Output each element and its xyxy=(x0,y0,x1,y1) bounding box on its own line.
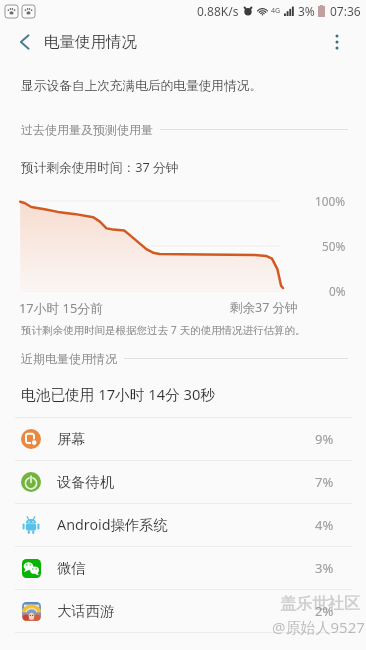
staticText: 剩余37 分钟 xyxy=(230,299,298,316)
button[interactable]: 微信 xyxy=(0,547,366,589)
button[interactable]: 大话西游 xyxy=(0,590,366,632)
staticText: 17小时 15分前 xyxy=(19,299,103,316)
staticText: 预计剩余使用时间：37 分钟 xyxy=(21,158,179,175)
button[interactable]: 设备待机 xyxy=(0,461,366,503)
staticText: 电池已使用 17小时 14分 30秒 xyxy=(21,384,216,404)
staticText: 4G xyxy=(271,6,281,16)
button[interactable]: 屏幕 xyxy=(0,418,366,460)
staticText: 3% xyxy=(315,559,334,577)
button[interactable]: More options xyxy=(317,22,357,62)
staticText: 设备待机 xyxy=(57,473,115,491)
staticText: @原始人9527 xyxy=(272,617,365,637)
staticText: 显示设备自上次充满电后的电量使用情况。 xyxy=(21,78,263,94)
staticText: 预计剩余使用时间是根据您过去 7 天的使用情况进行估算的。 xyxy=(21,323,306,337)
staticText: 0% xyxy=(329,283,346,299)
button[interactable]: Android操作系统 xyxy=(0,504,366,546)
staticText: Android操作系统 xyxy=(57,515,168,535)
button[interactable]: Back xyxy=(0,22,48,62)
staticText: 50% xyxy=(322,238,346,254)
staticText: 盖乐世社区 xyxy=(280,594,360,614)
staticText: 过去使用量及预测使用量 xyxy=(21,122,153,137)
staticText: 近期电量使用情况 xyxy=(21,351,117,366)
staticText: 7% xyxy=(315,473,334,491)
staticText: 100% xyxy=(315,193,346,209)
staticText: 07:36 xyxy=(330,3,361,19)
staticText: 9% xyxy=(315,430,334,448)
staticText: 3% xyxy=(298,3,315,19)
staticText: 微信 xyxy=(57,559,86,577)
staticText: 屏幕 xyxy=(57,430,86,448)
staticText: 电量使用情况 xyxy=(44,32,137,52)
staticText: 0.88K/s xyxy=(197,3,239,19)
staticText: 大话西游 xyxy=(57,602,115,620)
staticText: 4% xyxy=(315,516,334,534)
staticText: 2% xyxy=(315,602,334,620)
